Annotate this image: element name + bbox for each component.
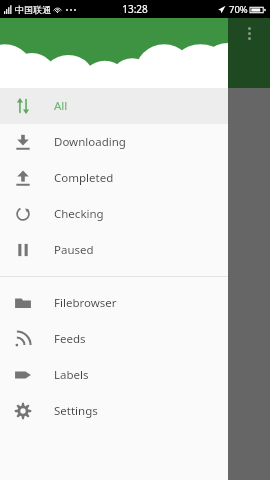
staticText: 13:28: [122, 2, 148, 16]
button[interactable]: More options: [241, 27, 257, 43]
button[interactable]: Paused: [0, 232, 228, 268]
staticText: Settings: [54, 403, 98, 419]
button[interactable]: Settings: [0, 393, 228, 429]
staticText: Completed: [54, 170, 114, 186]
button[interactable]: Filebrowser: [0, 285, 228, 321]
button[interactable]: All: [0, 88, 228, 124]
staticText: 70%: [229, 3, 248, 16]
staticText: Feeds: [54, 331, 86, 347]
button[interactable]: Checking: [0, 196, 228, 232]
staticText: 中国联通: [15, 4, 51, 15]
button[interactable]: Downloading: [0, 124, 228, 160]
staticText: All: [54, 98, 68, 114]
button[interactable]: Labels: [0, 357, 228, 393]
staticText: Labels: [54, 367, 89, 383]
button[interactable]: Completed: [0, 160, 228, 196]
staticText: Checking: [54, 206, 104, 222]
button[interactable]: Feeds: [0, 321, 228, 357]
staticText: Downloading: [54, 134, 126, 150]
staticText: Filebrowser: [54, 295, 117, 311]
staticText: Paused: [54, 242, 94, 258]
